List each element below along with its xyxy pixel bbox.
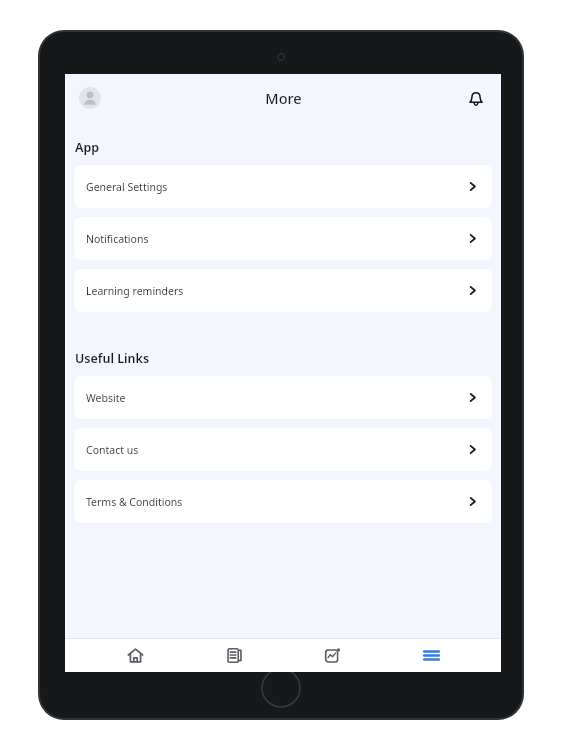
button[interactable]: General Settings bbox=[74, 165, 492, 208]
button[interactable]: More bbox=[403, 639, 459, 672]
staticText: Notifications bbox=[86, 232, 149, 246]
button[interactable]: Notifications bbox=[74, 217, 492, 260]
button[interactable]: Home bbox=[107, 639, 163, 672]
staticText: Website bbox=[86, 391, 126, 405]
button[interactable]: Lessons bbox=[206, 639, 262, 672]
button[interactable]: Notifications bbox=[461, 83, 491, 113]
button[interactable]: Website bbox=[74, 376, 492, 419]
staticText: Learning reminders bbox=[86, 284, 184, 298]
button[interactable]: Contact us bbox=[74, 428, 492, 471]
button[interactable]: Profile bbox=[73, 81, 107, 115]
staticText: Contact us bbox=[86, 443, 139, 457]
button[interactable]: Progress bbox=[304, 639, 360, 672]
staticText: More bbox=[265, 88, 302, 108]
staticText: App bbox=[75, 139, 100, 156]
staticText: Useful Links bbox=[75, 350, 150, 367]
staticText: Terms & Conditions bbox=[86, 495, 183, 509]
staticText: General Settings bbox=[86, 180, 168, 194]
button[interactable]: Terms & Conditions bbox=[74, 480, 492, 523]
button[interactable]: Learning reminders bbox=[74, 269, 492, 312]
